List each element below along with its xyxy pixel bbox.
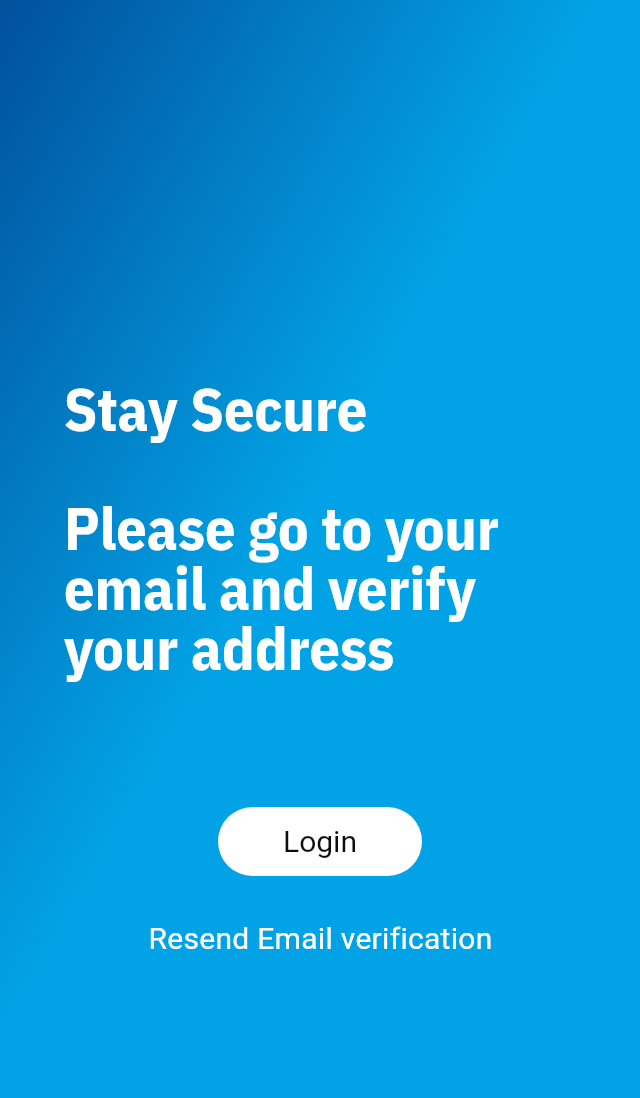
staticText: Login bbox=[283, 824, 357, 859]
staticText: Resend Email verification bbox=[148, 921, 493, 956]
button[interactable]: Login bbox=[218, 807, 422, 876]
button[interactable]: Resend Email verification bbox=[138, 917, 503, 960]
staticText: Stay Secure Please go to your email and … bbox=[64, 369, 499, 687]
